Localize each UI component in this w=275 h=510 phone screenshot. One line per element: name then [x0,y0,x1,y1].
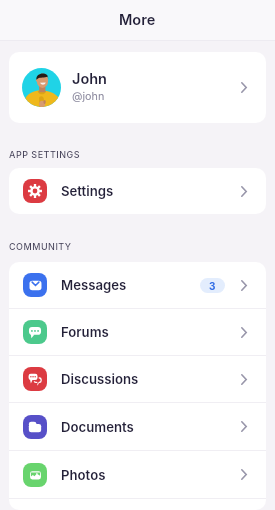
staticText: 3 [209,280,216,292]
button[interactable]: Discussions [9,356,266,402]
staticText: More [119,11,156,29]
staticText: @john [72,90,105,103]
staticText: APP SETTINGS [9,149,81,160]
staticText: Documents [61,419,134,435]
staticText: Photos [61,467,106,483]
button[interactable]: Photos [9,451,266,498]
staticText: John [72,70,107,88]
button[interactable]: Settings [9,168,266,214]
staticText: Messages [61,277,127,293]
staticText: COMMUNITY [9,241,72,252]
staticText: Discussions [61,371,139,387]
staticText: Forums [61,324,109,340]
staticText: Settings [61,183,114,199]
button[interactable]: Documents [9,403,266,450]
button[interactable]: Messages [9,262,266,308]
button[interactable]: John [9,52,266,123]
button[interactable]: Forums [9,309,266,355]
